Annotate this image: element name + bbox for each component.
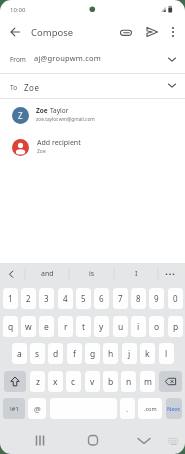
staticText: 2 — [26, 293, 31, 304]
staticText: 10:00 — [10, 6, 26, 14]
staticText: 3 — [44, 293, 49, 304]
button[interactable] — [132, 430, 156, 450]
button[interactable]: d — [48, 343, 63, 364]
button[interactable]: a — [12, 343, 27, 364]
button[interactable]: Next — [166, 398, 182, 419]
button[interactable]: s — [30, 343, 45, 364]
button[interactable]: Add recipient — [0, 132, 185, 162]
staticText: Add recipient — [37, 138, 81, 148]
button[interactable]: 2 — [21, 288, 36, 309]
staticText: d — [53, 348, 59, 360]
button[interactable]: !#1 — [3, 398, 25, 419]
staticText: 0 — [173, 293, 178, 304]
staticText: @ — [34, 404, 41, 414]
button[interactable]: e — [39, 316, 54, 337]
button[interactable]: b — [103, 371, 118, 392]
button[interactable]: From — [0, 48, 185, 73]
staticText: 4 — [63, 293, 68, 304]
staticText: t — [82, 321, 86, 333]
staticText: 9 — [154, 293, 159, 304]
button[interactable]: j — [122, 343, 137, 364]
button[interactable]: z — [30, 371, 45, 392]
staticText: b — [108, 376, 114, 388]
button[interactable]: p — [168, 316, 183, 337]
staticText: and — [41, 269, 54, 279]
button[interactable] — [6, 23, 24, 41]
button[interactable]: Z — [0, 101, 185, 130]
staticText: Zoe — [37, 148, 46, 155]
button[interactable] — [81, 430, 104, 450]
button[interactable]: k — [140, 343, 155, 364]
button[interactable]: 3 — [39, 288, 54, 309]
staticText: k — [145, 348, 150, 360]
staticText: 6 — [99, 293, 104, 304]
button[interactable]: To — [0, 74, 185, 98]
button[interactable]: @ — [28, 398, 46, 419]
button[interactable] — [166, 23, 180, 41]
button[interactable] — [4, 371, 26, 392]
staticText: aj@groupwm.com — [34, 53, 101, 63]
button[interactable]: i — [131, 316, 146, 337]
button[interactable] — [144, 24, 160, 40]
staticText: !#1 — [10, 405, 19, 413]
button[interactable]: m — [140, 371, 155, 392]
staticText: j — [128, 348, 131, 360]
staticText: 1 — [8, 293, 13, 304]
button[interactable]: g — [85, 343, 100, 364]
button[interactable]: 8 — [131, 288, 146, 309]
button[interactable]: is — [69, 263, 114, 285]
button[interactable]: r — [58, 316, 73, 337]
staticText: 8 — [136, 293, 141, 304]
button[interactable]: 5 — [76, 288, 91, 309]
button[interactable] — [28, 430, 52, 450]
staticText: r — [64, 321, 68, 333]
staticText: 5 — [81, 293, 86, 304]
button[interactable]: x — [48, 371, 63, 392]
button[interactable]: q — [3, 316, 18, 337]
button[interactable] — [0, 263, 25, 285]
staticText: g — [90, 348, 96, 360]
button[interactable]: I — [114, 263, 158, 285]
button[interactable]: and — [25, 263, 69, 285]
staticText: f — [73, 348, 76, 360]
button[interactable]: h — [103, 343, 118, 364]
button[interactable]: l — [159, 343, 174, 364]
staticText: Z — [18, 110, 23, 121]
staticText: q — [8, 321, 14, 333]
button[interactable]: n — [121, 371, 136, 392]
staticText: is — [89, 269, 95, 279]
button[interactable]: 4 — [58, 288, 73, 309]
button[interactable]: 7 — [113, 288, 128, 309]
button[interactable]: u — [113, 316, 128, 337]
button[interactable]: 6 — [94, 288, 109, 309]
staticText: y — [99, 321, 104, 333]
button[interactable]: . — [120, 398, 135, 419]
staticText: x — [53, 376, 58, 388]
button[interactable]: v — [85, 371, 100, 392]
staticText: n — [126, 376, 132, 388]
button[interactable]: w — [21, 316, 36, 337]
staticText: h — [108, 348, 114, 360]
staticText: 7 — [118, 293, 123, 304]
button[interactable]: 0 — [168, 288, 183, 309]
staticText: From — [10, 55, 26, 64]
button[interactable] — [164, 432, 182, 448]
staticText: zoe.taylor.wm@gmail.com — [36, 116, 95, 123]
staticText: a — [17, 348, 22, 360]
button[interactable]: o — [149, 316, 164, 337]
button[interactable] — [158, 263, 185, 285]
staticText: . — [126, 404, 129, 414]
button[interactable] — [118, 24, 134, 40]
button[interactable]: 1 — [3, 288, 18, 309]
button[interactable]: t — [76, 316, 91, 337]
button[interactable]: 9 — [149, 288, 164, 309]
button[interactable]: .com — [138, 398, 162, 419]
button[interactable]: y — [94, 316, 109, 337]
button[interactable]: f — [67, 343, 82, 364]
button[interactable]: c — [66, 371, 81, 392]
staticText: m — [144, 376, 152, 388]
staticText: Compose — [31, 26, 74, 39]
button[interactable] — [159, 371, 182, 392]
staticText: .com — [144, 405, 157, 412]
